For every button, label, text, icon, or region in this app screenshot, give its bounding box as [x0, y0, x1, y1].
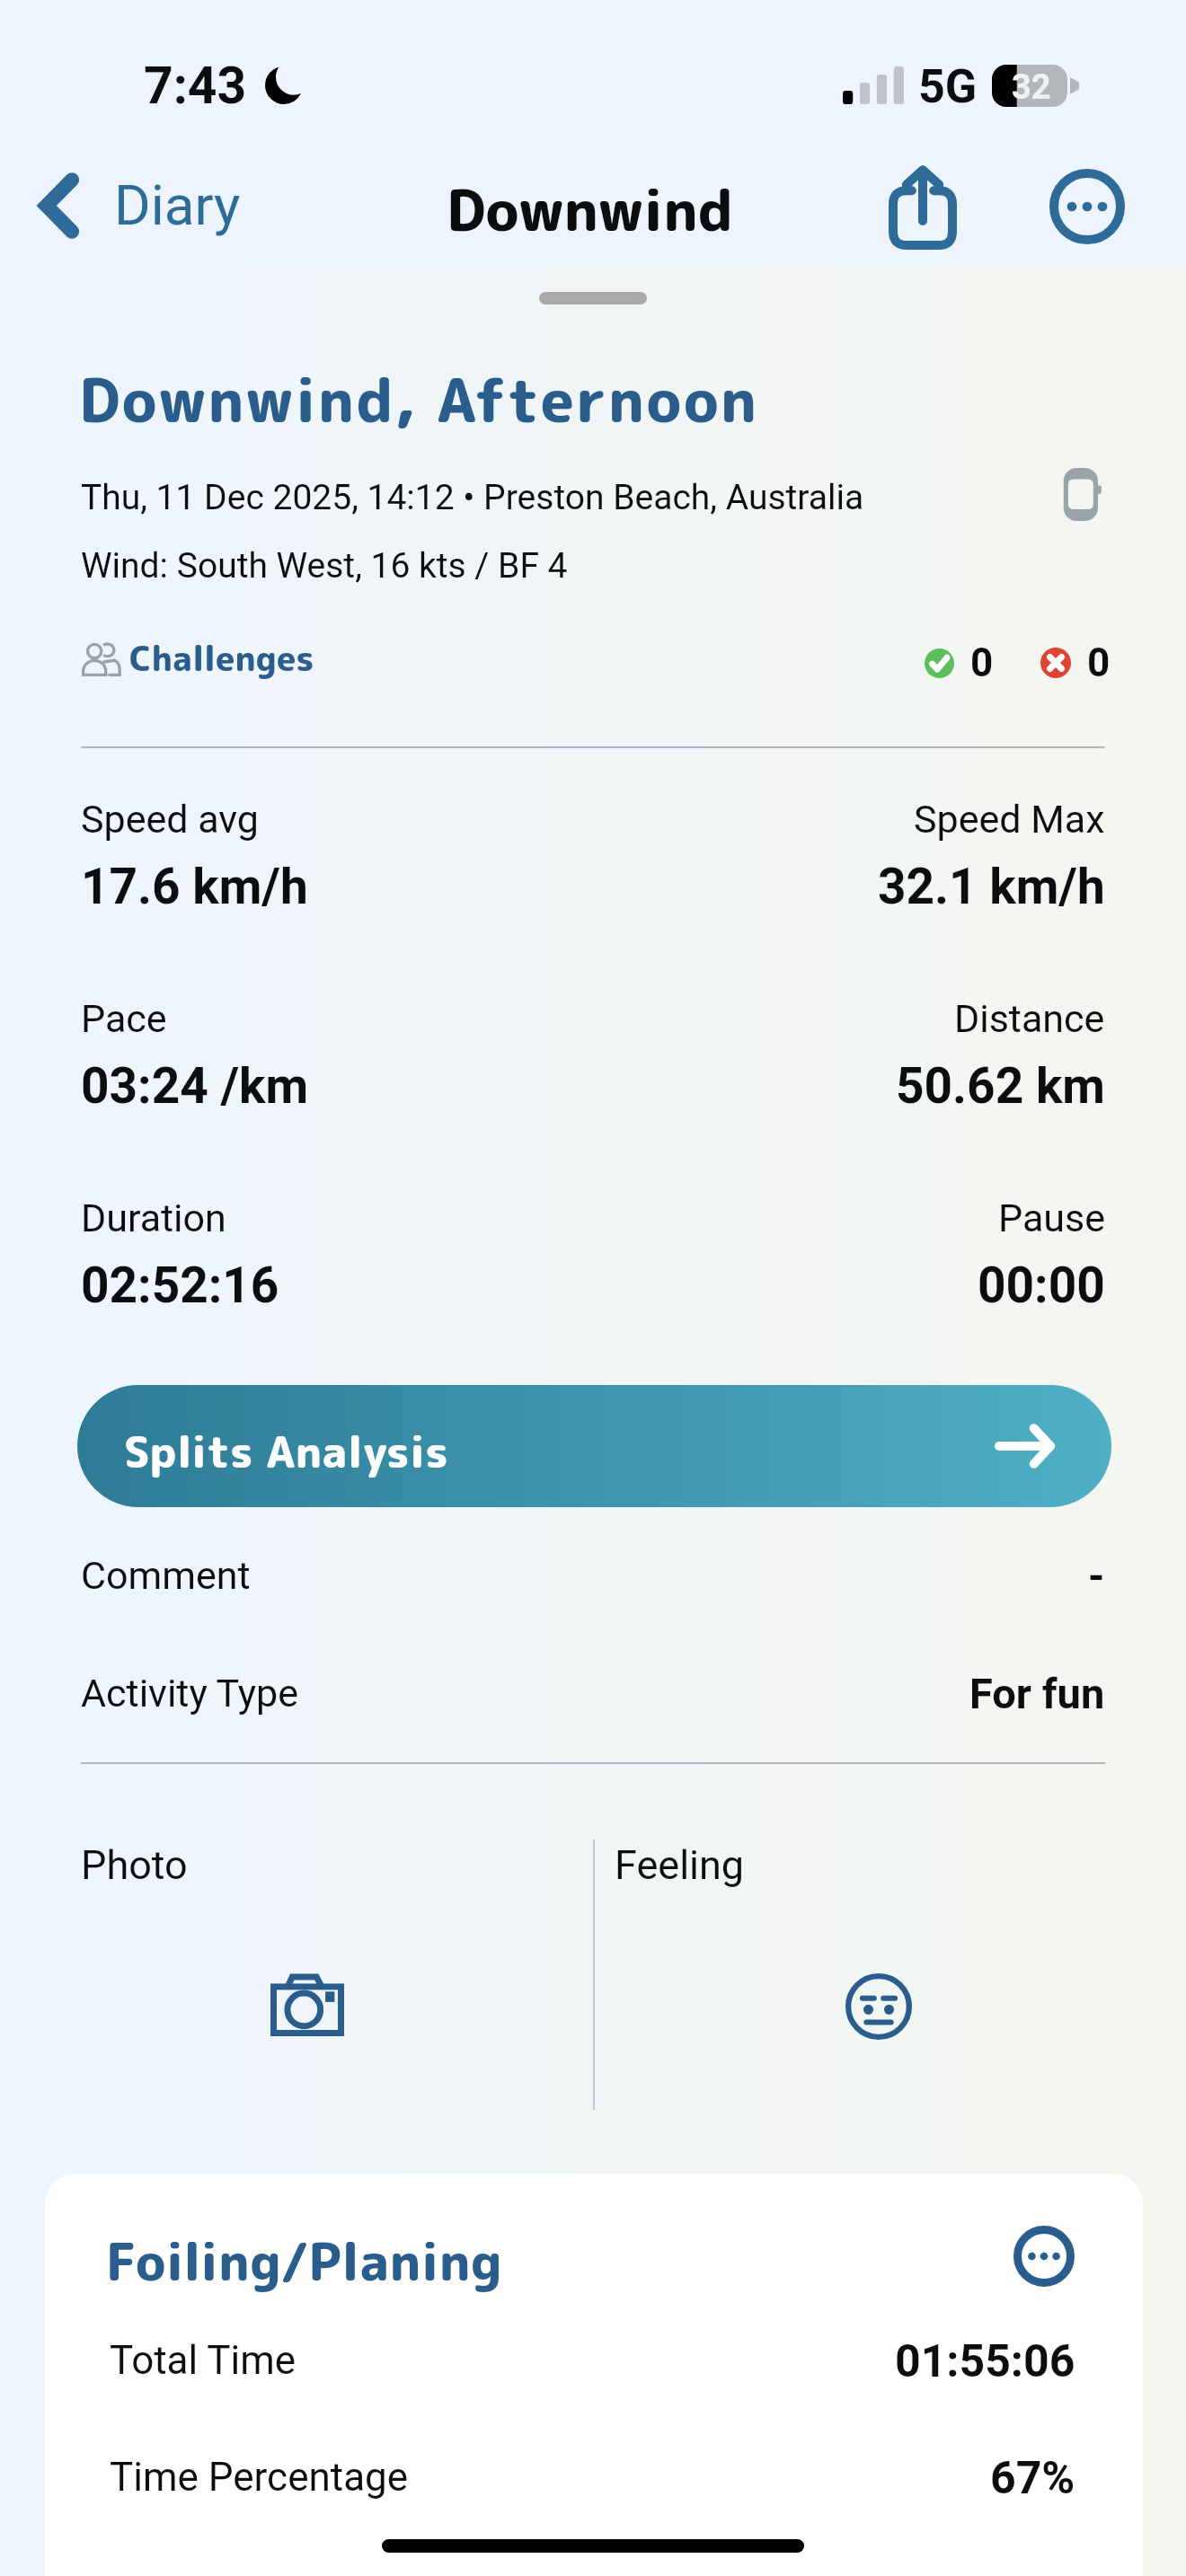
staticText: Activity Type — [81, 1671, 299, 1716]
staticText: 32 — [1012, 67, 1051, 108]
staticText: Pause — [998, 1195, 1105, 1240]
button[interactable]: Splits Analysis — [77, 1385, 1111, 1507]
staticText: Speed avg — [81, 797, 259, 842]
staticText: Downwind — [447, 170, 734, 249]
staticText: 50.62 km — [896, 1057, 1105, 1115]
staticText: Foiling/Planing — [106, 2226, 502, 2298]
staticText: Distance — [954, 996, 1105, 1041]
staticText: For fun — [969, 1669, 1105, 1718]
staticText: Wind: South West, 16 kts / BF 4 — [81, 545, 568, 587]
button[interactable]: Set feeling — [825, 1953, 933, 2060]
staticText: 5G — [918, 59, 978, 114]
button[interactable]: Diary — [23, 163, 259, 247]
staticText: Total Time — [110, 2337, 296, 2384]
staticText: Photo — [81, 1841, 188, 1889]
staticText: 00:00 — [978, 1257, 1105, 1314]
button[interactable]: Section options — [999, 2211, 1089, 2301]
button[interactable]: Challenges — [74, 631, 322, 685]
staticText: 02:52:16 — [81, 1257, 279, 1314]
staticText: Time Percentage — [110, 2454, 409, 2501]
staticText: Feeling — [615, 1841, 745, 1889]
staticText: 32.1 km/h — [878, 858, 1105, 915]
staticText: 03:24 /km — [81, 1057, 309, 1115]
button[interactable]: Share — [870, 154, 976, 260]
button[interactable]: Add photo — [244, 1949, 370, 2062]
staticText: 67% — [990, 2452, 1075, 2505]
staticText: 7:43 — [144, 56, 247, 116]
staticText: Duration — [81, 1195, 226, 1240]
staticText: 01:55:06 — [895, 2335, 1075, 2388]
staticText: Splits Analysis — [124, 1421, 449, 1481]
staticText: Speed Max — [914, 797, 1105, 842]
staticText: Downwind, Afternoon — [79, 358, 759, 441]
staticText: Challenges — [129, 634, 314, 682]
staticText: Comment — [81, 1553, 251, 1598]
staticText: 17.6 km/h — [81, 858, 308, 915]
staticText: 0 — [1087, 640, 1111, 686]
staticText: - — [1088, 1551, 1105, 1601]
staticText: Pace — [81, 996, 167, 1041]
staticText: Diary — [114, 172, 241, 238]
staticText: 0 — [970, 640, 994, 686]
button[interactable]: More options — [1035, 154, 1139, 259]
staticText: Thu, 11 Dec 2025, 14:12 • Preston Beach,… — [81, 477, 864, 518]
